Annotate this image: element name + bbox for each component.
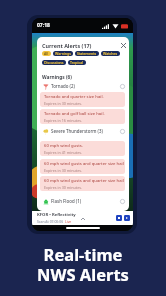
button[interactable]: Stop <box>116 215 122 221</box>
staticText: 60 mph wind gusts. <box>44 143 84 149</box>
button[interactable]: Discussions <box>42 60 66 65</box>
button[interactable]: 60 mph wind gusts. <box>40 141 125 156</box>
staticText: Real-time NWS Alerts <box>0 243 166 286</box>
button[interactable]: Tornado and golf ball size hail. <box>40 109 125 124</box>
staticText: Tornado and golf ball size hail. <box>44 111 105 117</box>
staticText: Expires in 41 minutes. <box>44 150 82 155</box>
button[interactable]: 60 mph wind gusts and quarter size hail. <box>40 159 125 174</box>
staticText: KFOR • Reflectivity <box>37 212 76 218</box>
staticText: Watches <box>103 51 118 56</box>
staticText: Statements <box>77 51 97 56</box>
staticText: Tropical <box>70 60 84 65</box>
staticText: 60 mph wind gusts and quarter size hail. <box>44 161 124 167</box>
button[interactable]: Play <box>124 215 130 221</box>
staticText: All <box>44 51 49 56</box>
button[interactable]: Expand <box>79 215 86 222</box>
staticText: 07:18 <box>37 22 50 29</box>
button[interactable]: Tropical <box>68 60 86 65</box>
staticText: Tornado (2) <box>51 83 75 89</box>
staticText: Warnings (6) <box>42 74 72 81</box>
button[interactable]: Flash Flood (1) <box>37 196 129 206</box>
staticText: Discussions <box>44 60 64 65</box>
staticText: Current Alerts (17) <box>42 42 92 49</box>
staticText: Expires in 30 minutes. <box>44 101 82 106</box>
button[interactable]: Statements <box>75 51 99 56</box>
staticText: Expires in 16 minutes. <box>44 118 82 123</box>
button[interactable]: Severe Thunderstorm (3) <box>37 126 129 136</box>
button[interactable]: 60 mph wind gusts and quarter size hail. <box>40 176 125 191</box>
staticText: Severe Thunderstorm (3) <box>51 128 103 134</box>
button[interactable]: Warnings <box>53 51 73 56</box>
staticText: Tornado and quarter size hail. <box>44 94 104 100</box>
staticText: Flash Flood (1) <box>51 198 82 204</box>
staticText: Expires in 30 minutes. <box>44 168 82 173</box>
button[interactable]: Watches <box>101 51 120 56</box>
staticText: Expires in 30 minutes. <box>44 185 82 190</box>
staticText: Live <box>65 219 72 224</box>
button[interactable]: Tornado and quarter size hail. <box>40 92 125 107</box>
button[interactable]: Close <box>118 40 128 50</box>
staticText: 60 mph wind gusts and quarter size hail. <box>44 178 124 184</box>
button[interactable]: Tornado (2) <box>37 81 129 91</box>
button[interactable]: All <box>42 51 51 56</box>
staticText: Warnings <box>55 51 71 56</box>
staticText: Scan At 07:00:06 <box>37 219 64 224</box>
